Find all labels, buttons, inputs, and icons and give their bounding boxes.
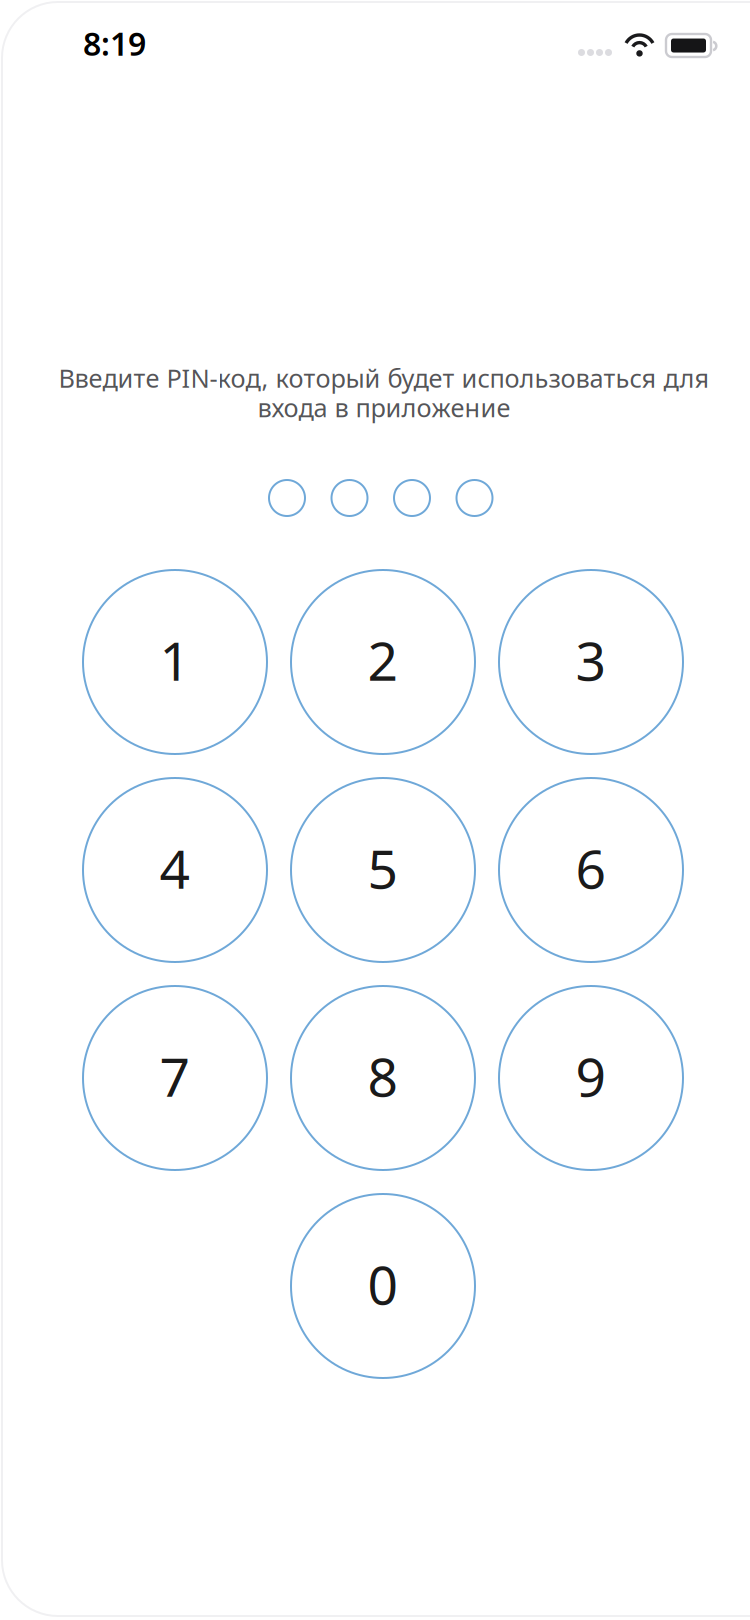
staticText: 8:19 (83, 22, 146, 64)
button[interactable]: 7 (83, 986, 267, 1170)
button[interactable]: 3 (499, 570, 683, 754)
button[interactable]: 8 (291, 986, 475, 1170)
staticText: 3 (575, 625, 606, 695)
button[interactable]: 6 (499, 778, 683, 962)
button[interactable]: 5 (291, 778, 475, 962)
staticText: 0 (367, 1249, 398, 1319)
staticText: входа в приложение (257, 391, 510, 424)
staticText: 2 (367, 625, 398, 695)
staticText: 7 (159, 1041, 190, 1111)
staticText: 1 (159, 625, 190, 695)
button[interactable]: 0 (291, 1194, 475, 1378)
staticText: 6 (575, 833, 606, 903)
button[interactable]: 2 (291, 570, 475, 754)
staticText: 5 (367, 833, 398, 903)
button[interactable]: 1 (83, 570, 267, 754)
button[interactable]: 4 (83, 778, 267, 962)
staticText: 9 (575, 1041, 606, 1111)
button[interactable]: 9 (499, 986, 683, 1170)
staticText: Введите PIN-код, который будет использов… (58, 361, 709, 395)
staticText: 8 (367, 1041, 398, 1111)
staticText: 4 (159, 833, 190, 903)
